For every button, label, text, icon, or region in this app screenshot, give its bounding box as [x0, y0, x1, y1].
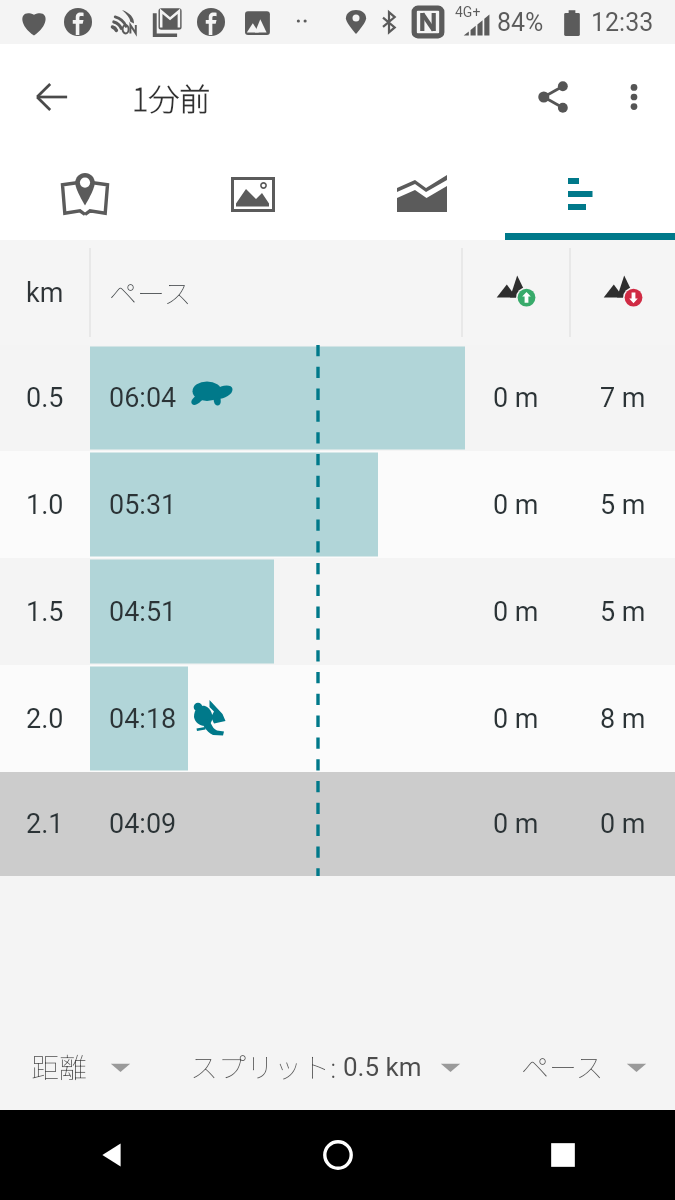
button[interactable]: Recents: [450, 1110, 675, 1200]
staticText: 06:04: [109, 382, 177, 414]
button[interactable]: 0.5: [0, 345, 675, 451]
button[interactable]: More options: [597, 44, 671, 150]
button[interactable]: Home: [225, 1110, 450, 1200]
staticText: 0.5 km: [343, 1052, 422, 1082]
staticText: 0 m: [493, 596, 539, 628]
staticText: 0 m: [493, 382, 539, 414]
staticText: 0 m: [600, 808, 646, 840]
staticText: 05:31: [109, 489, 177, 521]
staticText: 2.0: [26, 703, 64, 735]
button[interactable]: Map: [1, 150, 169, 240]
button[interactable]: スプリット:: [190, 1046, 462, 1087]
staticText: 04:51: [109, 596, 177, 628]
staticText: スプリット:: [190, 1046, 337, 1087]
button[interactable]: 1.0: [0, 451, 675, 558]
staticText: 0.5: [26, 382, 64, 414]
button[interactable]: 2.1: [0, 772, 675, 876]
button[interactable]: 1.5: [0, 558, 675, 665]
staticText: 4G+: [455, 4, 481, 20]
button[interactable]: Share: [511, 44, 597, 150]
staticText: 7 m: [600, 382, 646, 414]
staticText: 5 m: [600, 489, 646, 521]
staticText: 84%: [497, 8, 544, 37]
button[interactable]: Photos: [169, 150, 337, 240]
button[interactable]: Back: [0, 1110, 225, 1200]
staticText: 1.5: [26, 596, 64, 628]
staticText: 距離: [31, 1046, 88, 1087]
button[interactable]: 2.0: [0, 665, 675, 772]
button[interactable]: Back: [0, 44, 104, 150]
staticText: km: [26, 277, 64, 309]
button[interactable]: ペース: [521, 1046, 648, 1087]
staticText: 04:18: [109, 703, 177, 735]
staticText: ペース: [109, 272, 192, 313]
staticText: 8 m: [600, 703, 646, 735]
staticText: 1.0: [26, 489, 64, 521]
button[interactable]: 距離: [31, 1046, 132, 1087]
button[interactable]: Splits: [505, 150, 673, 240]
staticText: 0 m: [493, 703, 539, 735]
staticText: 04:09: [109, 808, 177, 840]
staticText: 0 m: [493, 489, 539, 521]
staticText: 1分前: [132, 75, 211, 120]
staticText: 2.1: [26, 808, 64, 840]
button[interactable]: Graph: [337, 150, 505, 240]
staticText: ペース: [521, 1046, 604, 1087]
staticText: 5 m: [600, 596, 646, 628]
staticText: 0 m: [493, 808, 539, 840]
staticText: 12:33: [591, 8, 654, 37]
